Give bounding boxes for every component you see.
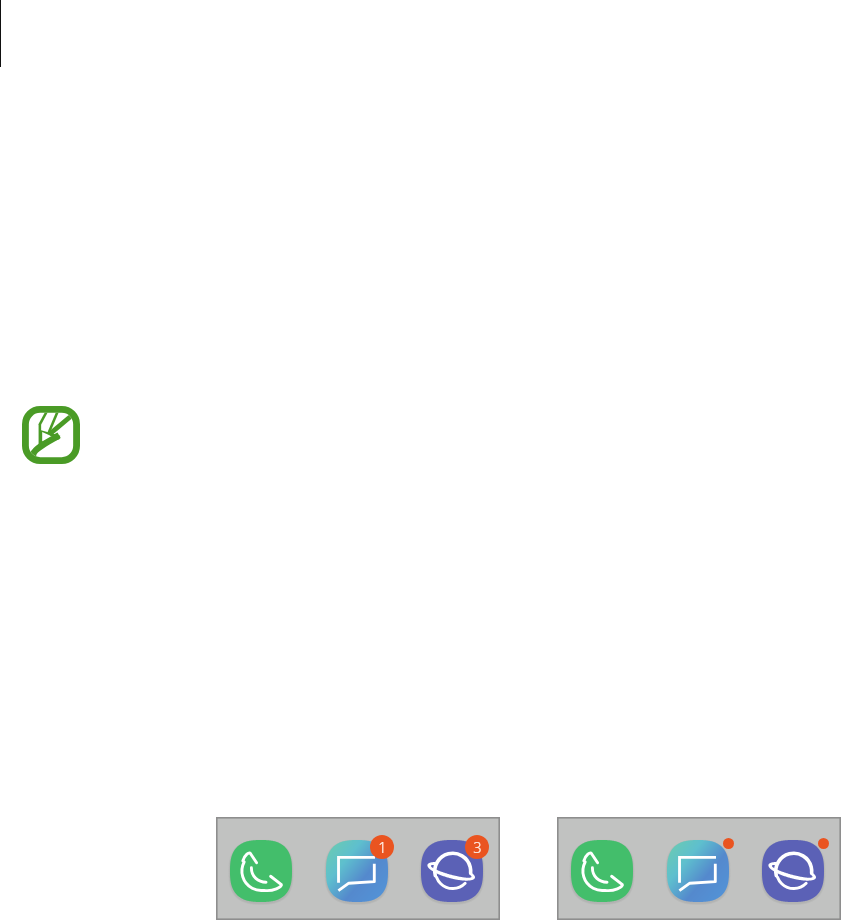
button[interactable]: Phone [571,840,633,902]
staticText: 1 [378,837,387,857]
other: 1 unread [370,835,394,859]
staticText: 3 [473,837,482,857]
button[interactable]: Samsung Notes [22,406,80,464]
other: 3 unread [465,835,489,859]
button[interactable]: Phone [230,840,292,902]
button[interactable]: Internet [421,840,483,902]
button[interactable]: Messages [326,840,388,902]
button[interactable]: Messages [667,840,729,902]
button[interactable]: Internet [762,840,824,902]
